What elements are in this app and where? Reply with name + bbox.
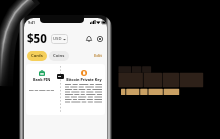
staticText: $50 <box>27 31 47 47</box>
button[interactable]: Profile <box>96 35 104 43</box>
button[interactable]: Notifications <box>85 35 93 43</box>
staticText: 9:41 <box>28 20 36 25</box>
button[interactable]: USD <box>51 34 68 44</box>
button[interactable]: Bitcoin Private Key <box>64 64 105 115</box>
staticText: Coins <box>53 53 65 59</box>
button[interactable]: Edit <box>93 51 104 61</box>
button[interactable]: Cards <box>27 51 47 61</box>
staticText: USD <box>53 36 62 42</box>
staticText: Bitcoin Private Key <box>66 77 102 82</box>
other: Store your secrets in a private vault <box>118 64 204 98</box>
staticText: Bank PIN <box>33 77 51 82</box>
staticText: Edit <box>94 53 103 59</box>
staticText: Cards <box>31 53 43 59</box>
button[interactable]: Bank PIN <box>26 64 57 115</box>
button[interactable]: Coins <box>49 51 69 61</box>
